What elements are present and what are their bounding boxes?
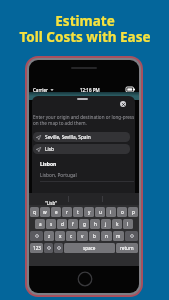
button[interactable]: o: [117, 207, 127, 217]
staticText: u: [99, 209, 102, 215]
button[interactable]: a: [35, 219, 45, 229]
button[interactable]: s: [46, 219, 56, 229]
button[interactable]: Emoji: [44, 243, 53, 253]
staticText: k: [116, 221, 119, 227]
button[interactable]: Seville, Sevilla, Spain: [36, 132, 127, 142]
staticText: w: [43, 209, 47, 215]
staticText: a: [39, 221, 42, 227]
button[interactable]: i: [106, 207, 116, 217]
button[interactable]: z: [44, 231, 54, 241]
staticText: Lisbon: [40, 161, 57, 168]
button[interactable]: Home: [77, 271, 93, 287]
staticText: r: [66, 209, 68, 215]
staticText: d: [61, 221, 64, 227]
staticText: n: [105, 233, 108, 239]
button[interactable]: d: [57, 219, 67, 229]
staticText: "Lisb": [45, 200, 58, 206]
button[interactable]: c: [66, 231, 76, 241]
staticText: 12:16 PM: [80, 87, 100, 93]
staticText: q: [33, 209, 36, 215]
button[interactable]: space: [64, 243, 115, 253]
staticText: Estimate: [55, 12, 115, 30]
button[interactable]: q: [30, 207, 39, 217]
button[interactable]: k: [112, 219, 122, 229]
button[interactable]: m: [113, 231, 124, 241]
staticText: e: [55, 209, 58, 215]
staticText: m: [116, 233, 121, 239]
staticText: Seville, Sevilla, Spain: [45, 134, 91, 141]
button[interactable]: g: [79, 219, 89, 229]
staticText: c: [70, 233, 73, 239]
staticText: Toll Costs with Ease: [19, 28, 151, 46]
staticText: return: [120, 245, 134, 251]
staticText: l: [127, 221, 129, 227]
button[interactable]: j: [101, 219, 111, 229]
button[interactable]: x: [55, 231, 65, 241]
staticText: x: [59, 233, 62, 239]
staticText: v: [81, 233, 84, 239]
button[interactable]: Close: [120, 101, 126, 107]
button[interactable]: u: [95, 207, 105, 217]
staticText: b: [93, 233, 96, 239]
button[interactable]: t: [73, 207, 83, 217]
staticText: z: [48, 233, 51, 239]
staticText: f: [72, 221, 74, 227]
button[interactable]: Lisb: [36, 144, 127, 154]
staticText: h: [94, 221, 97, 227]
button[interactable]: v: [77, 231, 88, 241]
staticText: i: [110, 209, 112, 215]
staticText: j: [105, 221, 107, 227]
button[interactable]: Backspace: [125, 231, 138, 241]
staticText: p: [132, 209, 135, 215]
button[interactable]: y: [84, 207, 94, 217]
staticText: space: [83, 245, 96, 251]
button[interactable]: 123: [30, 243, 43, 253]
button[interactable]: h: [90, 219, 100, 229]
button[interactable]: Dictation: [54, 243, 63, 253]
button[interactable]: l: [123, 219, 133, 229]
staticText: g: [83, 221, 86, 227]
button[interactable]: w: [40, 207, 50, 217]
staticText: o: [121, 209, 124, 215]
button[interactable]: f: [68, 219, 78, 229]
button[interactable]: r: [62, 207, 72, 217]
staticText: 123: [33, 245, 41, 251]
button[interactable]: b: [89, 231, 100, 241]
button[interactable]: e: [51, 207, 61, 217]
staticText: y: [88, 209, 91, 215]
staticText: Enter your origin and destination or lon…: [33, 114, 135, 126]
staticText: t: [77, 209, 79, 215]
button[interactable]: p: [128, 207, 138, 217]
staticText: Carrier: [33, 87, 48, 93]
staticText: s: [50, 221, 53, 227]
button[interactable]: return: [116, 243, 138, 253]
staticText: Lisb: [45, 146, 54, 153]
button[interactable]: n: [101, 231, 112, 241]
staticText: Lisbon, Portugal: [40, 172, 77, 179]
button[interactable]: Shift: [30, 231, 43, 241]
